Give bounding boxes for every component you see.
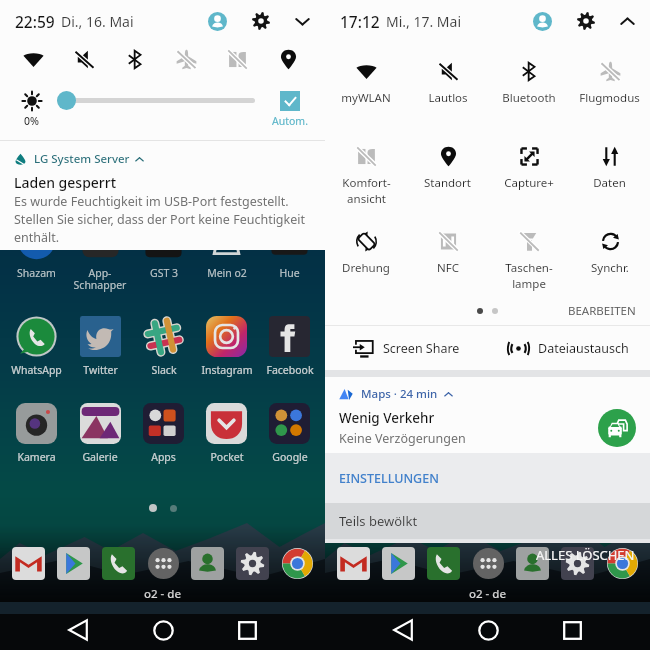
button[interactable]: Twitter — [393, 316, 457, 377]
button[interactable]: Capture+ — [488, 127, 569, 212]
staticText: Kamera — [17, 450, 56, 464]
button[interactable]: Hue — [258, 238, 321, 280]
button[interactable]: Dock app 3 — [143, 543, 183, 583]
button[interactable]: Dock app 6 — [277, 543, 317, 583]
button[interactable]: Back — [58, 612, 98, 648]
button[interactable]: Dock app 0 — [8, 543, 48, 583]
button[interactable]: Flugmodus — [569, 42, 650, 127]
button[interactable]: Komfort- ansicht — [325, 127, 407, 212]
button[interactable]: Instagram — [195, 316, 258, 377]
button[interactable]: Synchr. — [569, 212, 650, 297]
button[interactable]: Pocket — [520, 403, 583, 464]
button[interactable]: Shazam — [329, 238, 393, 280]
button[interactable]: Brightness — [57, 91, 76, 110]
button[interactable]: Expand — [289, 8, 315, 34]
button[interactable]: Dateiaustausch — [487, 326, 650, 370]
button[interactable]: Collapse — [614, 8, 640, 34]
staticText: Teils bewölkt — [339, 512, 418, 530]
button[interactable]: Standort — [407, 127, 488, 212]
button[interactable]: Dock app 1 — [378, 543, 418, 583]
button[interactable]: Mein o2 — [520, 238, 583, 280]
staticText: Galerie — [82, 450, 118, 464]
button[interactable]: Back — [383, 612, 423, 648]
staticText: App-Schnapper — [393, 266, 457, 292]
button[interactable]: Facebook — [583, 316, 646, 377]
staticText: Pocket — [535, 450, 569, 464]
button[interactable]: Daten — [569, 127, 650, 212]
button[interactable]: Autom. — [272, 89, 308, 128]
button[interactable]: Location — [271, 42, 305, 76]
button[interactable]: Dock app 4 — [512, 543, 552, 583]
button[interactable]: Dock app 4 — [187, 543, 227, 583]
button[interactable]: myWLAN — [325, 42, 407, 127]
button[interactable]: Home — [143, 612, 183, 648]
button[interactable]: Drehung — [325, 212, 407, 297]
button[interactable]: Lautlos — [407, 42, 488, 127]
button[interactable]: Instagram — [520, 316, 583, 377]
button[interactable]: Dock app 5 — [232, 543, 272, 583]
button[interactable]: Mein o2 — [195, 238, 258, 280]
button[interactable]: Dock app 2 — [98, 543, 138, 583]
button[interactable]: Recents — [552, 612, 592, 648]
button[interactable]: Recents — [227, 612, 267, 648]
staticText: Kamera — [342, 450, 381, 464]
button[interactable]: Dock app 1 — [53, 543, 93, 583]
staticText: Keine Verzögerungen — [339, 430, 466, 447]
staticText: o2 - de — [469, 586, 507, 602]
button[interactable]: Sound — [67, 42, 101, 76]
button[interactable]: NFC — [407, 212, 488, 297]
button[interactable]: Pocket — [195, 403, 258, 464]
staticText: WhatsApp — [336, 363, 387, 377]
button[interactable]: Kamera — [329, 403, 393, 464]
button[interactable]: Airplane mode — [169, 42, 203, 76]
button[interactable]: Comfort view — [220, 42, 254, 76]
button[interactable]: WhatsApp — [329, 316, 393, 377]
button[interactable]: Galerie — [393, 403, 457, 464]
button[interactable]: Dock app 0 — [333, 543, 373, 583]
button[interactable]: Kamera — [4, 403, 68, 464]
staticText: Di., 16. Mai — [61, 12, 134, 31]
button[interactable]: Shazam — [4, 238, 68, 280]
button[interactable]: Dock app 6 — [602, 543, 642, 583]
button[interactable]: Taschen- lampe — [488, 212, 569, 297]
button[interactable]: Google — [583, 403, 646, 464]
button[interactable]: Dock app 2 — [423, 543, 463, 583]
button[interactable]: ALLES LÖSCHEN — [325, 543, 650, 567]
staticText: Taschen- lampe — [505, 260, 553, 291]
button[interactable]: Wi-Fi — [16, 42, 50, 76]
button[interactable]: Home — [468, 612, 508, 648]
button[interactable]: User profile — [528, 7, 556, 35]
staticText: Google — [272, 450, 308, 464]
button[interactable]: App-Schnapper — [68, 238, 132, 292]
button[interactable]: Slack — [457, 316, 520, 377]
staticText: Autom. — [272, 114, 308, 128]
button[interactable]: GST 3 — [132, 238, 195, 280]
button[interactable]: Bluetooth — [488, 42, 569, 127]
button[interactable]: Slack — [132, 316, 195, 377]
button[interactable]: Google — [258, 403, 321, 464]
button[interactable]: Dock app 5 — [557, 543, 597, 583]
button[interactable]: Apps — [132, 403, 195, 464]
button[interactable]: User profile — [203, 7, 231, 35]
button[interactable]: Facebook — [258, 316, 321, 377]
button[interactable]: WhatsApp — [4, 316, 68, 377]
button[interactable]: Settings — [572, 7, 600, 35]
staticText: Pocket — [210, 450, 244, 464]
button[interactable]: Teils bewölkt — [325, 503, 650, 539]
button[interactable]: Apps — [457, 403, 520, 464]
button[interactable]: App-Schnapper — [393, 238, 457, 292]
button[interactable]: GST 3 — [457, 238, 520, 280]
staticText: Hue — [604, 266, 625, 280]
staticText: Mein o2 — [532, 266, 572, 280]
button[interactable]: Bluetooth — [118, 42, 152, 76]
button[interactable]: Dock app 3 — [468, 543, 508, 583]
button[interactable]: Twitter — [68, 316, 132, 377]
button[interactable]: Galerie — [68, 403, 132, 464]
button[interactable]: Settings — [247, 7, 275, 35]
button[interactable]: Screen Share — [325, 326, 487, 370]
button[interactable]: Navigate — [598, 409, 636, 447]
button[interactable]: BEARBEITEN — [554, 303, 650, 319]
button[interactable]: Hue — [583, 238, 646, 280]
staticText: Facebook — [591, 363, 639, 377]
button[interactable]: EINSTELLUNGEN — [325, 453, 650, 503]
